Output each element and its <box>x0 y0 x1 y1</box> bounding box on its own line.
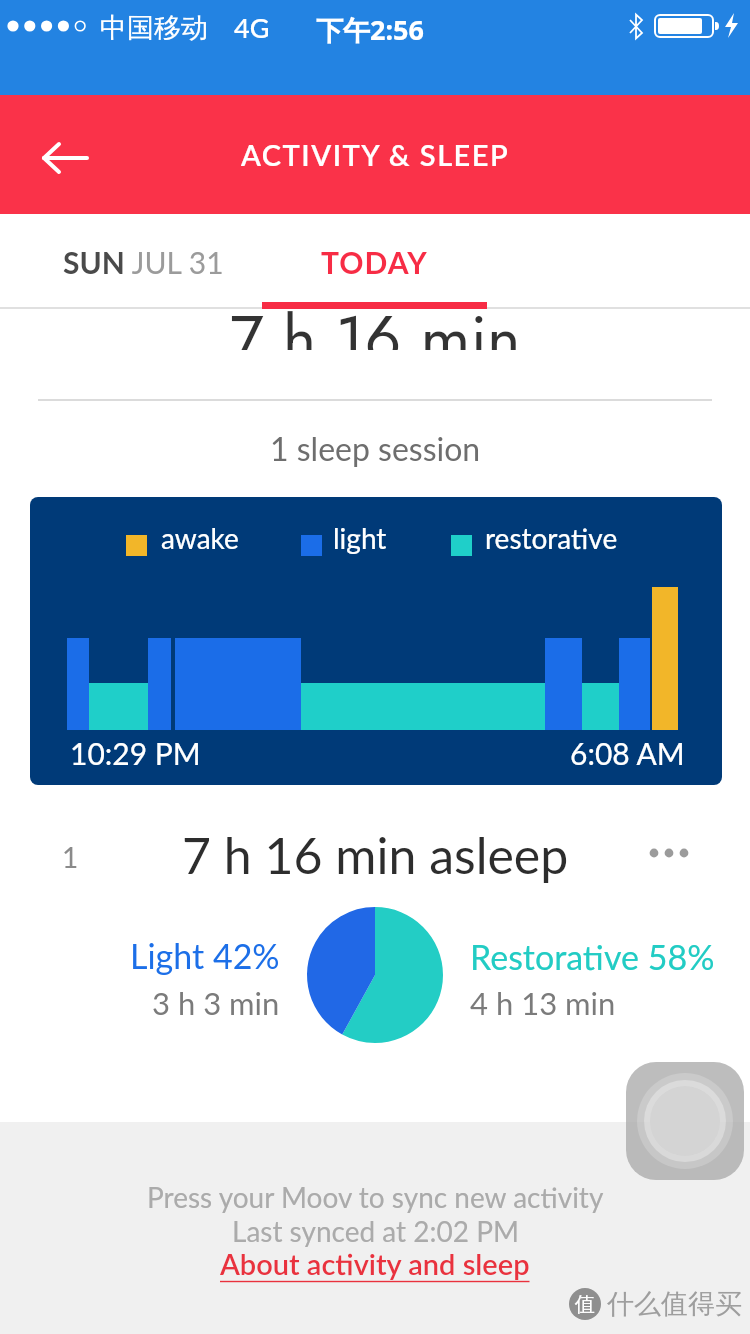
button[interactable]: SUN <box>63 214 224 309</box>
staticText: 4G <box>234 11 270 43</box>
staticText: awake <box>161 521 239 555</box>
staticText: light <box>333 521 387 555</box>
staticText: 值 <box>575 1292 595 1317</box>
staticText: 3 h 3 min <box>152 984 280 1021</box>
staticText: ACTIVITY & SLEEP <box>241 137 510 172</box>
staticText: 下午2:56 <box>316 11 424 48</box>
staticText: TODAY <box>321 244 428 280</box>
staticText: 1 sleep session <box>270 429 481 467</box>
staticText: Press your Moov to sync new activity <box>147 1180 604 1214</box>
button[interactable]: About activity and sleep <box>220 1246 530 1281</box>
staticText: 6:08 AM <box>570 735 685 771</box>
staticText: 中国移动 <box>100 11 208 45</box>
staticText: 10:29 PM <box>70 735 201 771</box>
staticText: Restorative 58% <box>470 936 715 977</box>
button[interactable] <box>626 1062 744 1180</box>
button[interactable] <box>42 142 88 174</box>
staticText: 7 h 16 min <box>230 309 521 350</box>
button[interactable] <box>648 846 692 860</box>
staticText: SUN <box>63 244 125 280</box>
staticText: 什么值得买 <box>607 1287 742 1321</box>
staticText: JUL 31 <box>125 244 224 280</box>
staticText: restorative <box>485 521 618 555</box>
button[interactable]: TODAY <box>262 214 487 309</box>
staticText: 4 h 13 min <box>470 984 616 1021</box>
staticText: 7 h 16 min asleep <box>182 825 569 885</box>
staticText: Light 42% <box>130 935 280 976</box>
staticText: 1 <box>62 840 79 874</box>
staticText: Last synced at 2:02 PM <box>232 1214 519 1248</box>
